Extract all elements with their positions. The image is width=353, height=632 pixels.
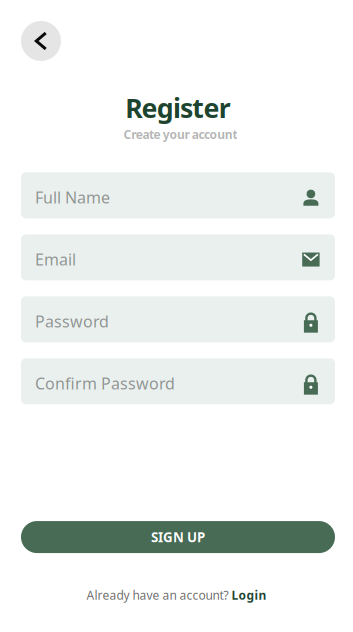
staticText: SIGN UP: [151, 528, 205, 546]
staticText: Register: [125, 90, 231, 125]
button[interactable]: Back: [21, 21, 61, 61]
staticText: Full Name: [35, 187, 110, 208]
staticText: Create your account: [124, 126, 237, 142]
staticText: Email: [35, 249, 76, 270]
staticText: Confirm Password: [35, 373, 175, 394]
staticText: Login: [231, 587, 266, 603]
button[interactable]: Full Name: [21, 172, 335, 218]
button[interactable]: SIGN UP: [21, 521, 335, 553]
button[interactable]: Login: [231, 587, 266, 603]
button[interactable]: Email: [21, 234, 335, 280]
button[interactable]: Password: [21, 296, 335, 342]
staticText: Password: [35, 311, 109, 332]
button[interactable]: Confirm Password: [21, 358, 335, 404]
staticText: Already have an account?: [86, 587, 228, 603]
